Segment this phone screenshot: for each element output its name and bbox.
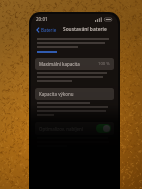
button[interactable]: Baterie: [35, 26, 58, 34]
staticText: Optimalizov. nabíjení: [39, 126, 84, 132]
staticText: Soustavání baterie: [63, 26, 107, 33]
staticText: Kapacita výkonu: [39, 91, 74, 97]
other: Optimalizované nabíjení zapnuto: [96, 124, 111, 133]
staticText: Baterie: [41, 27, 57, 33]
staticText: 20:01: [36, 16, 48, 22]
staticText: Maximální kapacita: [39, 61, 80, 67]
staticText: 100 %: [98, 61, 110, 67]
button[interactable]: [37, 50, 57, 54]
button[interactable]: Optimalizov. nabíjení: [35, 122, 114, 135]
button[interactable]: Maximální kapacita: [35, 58, 114, 70]
button[interactable]: Kapacita výkonu: [35, 88, 114, 100]
